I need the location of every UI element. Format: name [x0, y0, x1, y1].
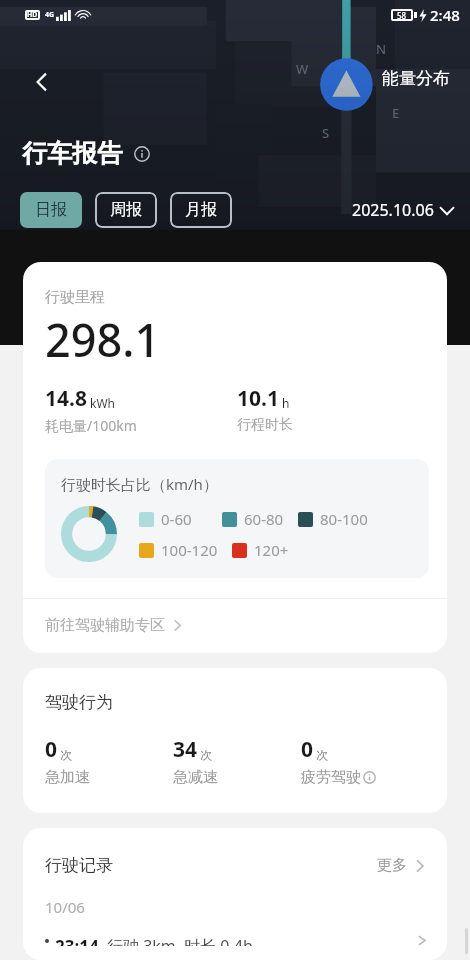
staticText: 耗电量/100km [45, 416, 137, 435]
staticText: kWh [90, 395, 115, 411]
staticText: 34 [173, 735, 198, 764]
staticText: 14.8 [45, 384, 87, 413]
staticText: N [376, 40, 387, 58]
staticText: 行驶时长占比（km/h） [61, 474, 218, 494]
button[interactable]: 能量分布 [378, 62, 454, 95]
staticText: 0 [45, 735, 58, 764]
staticText: S [322, 124, 330, 142]
staticText: 次 [200, 747, 212, 762]
staticText: 急减速 [173, 768, 218, 787]
button[interactable]: 月报 [170, 192, 232, 228]
staticText: 更多 [377, 856, 407, 875]
button[interactable]: 2025.10.06 [346, 193, 460, 227]
staticText: 疲劳驾驶 [301, 768, 361, 787]
staticText: 驾驶行为 [45, 692, 113, 713]
staticText: 298.1 [45, 309, 161, 370]
staticText: 急加速 [45, 768, 90, 787]
staticText: 行驶里程 [45, 288, 105, 307]
staticText: 行驶 3km 时长 0.4h [107, 935, 253, 946]
staticText: 次 [60, 747, 72, 762]
staticText: 10/06 [45, 897, 85, 917]
staticText: 58 [397, 10, 407, 21]
button[interactable]: 23:14 [23, 935, 447, 960]
button[interactable]: 前往驾驶辅助专区 [23, 599, 447, 653]
staticText: 能量分布 [382, 68, 450, 89]
staticText: 周报 [110, 200, 142, 220]
staticText: 月报 [185, 200, 217, 220]
button[interactable]: Back [20, 60, 64, 104]
staticText: 23:14 [55, 935, 99, 946]
staticText: 次 [316, 747, 328, 762]
staticText: 80-100 [320, 509, 368, 529]
staticText: 60-80 [244, 509, 284, 529]
button[interactable]: Info [129, 141, 155, 167]
staticText: 100-120 [161, 540, 218, 560]
staticText: HD [27, 10, 38, 20]
button[interactable]: 周报 [95, 192, 157, 228]
staticText: 行程时长 [237, 416, 293, 434]
staticText: 10.1 [237, 384, 279, 413]
staticText: W [296, 60, 309, 78]
button[interactable]: 更多 [375, 852, 429, 879]
staticText: 2:48 [430, 5, 460, 25]
staticText: h [282, 395, 290, 411]
staticText: 0-60 [161, 509, 192, 529]
staticText: 120+ [254, 540, 289, 560]
staticText: 2025.10.06 [352, 199, 434, 221]
staticText: 行驶记录 [45, 855, 113, 876]
staticText: 行车报告 [22, 138, 122, 169]
staticText: 0 [301, 735, 314, 764]
staticText: 日报 [35, 200, 67, 220]
button[interactable]: 日报 [20, 192, 82, 228]
staticText: E [392, 104, 400, 122]
staticText: 4G [45, 10, 55, 20]
staticText: 前往驾驶辅助专区 [45, 616, 165, 635]
